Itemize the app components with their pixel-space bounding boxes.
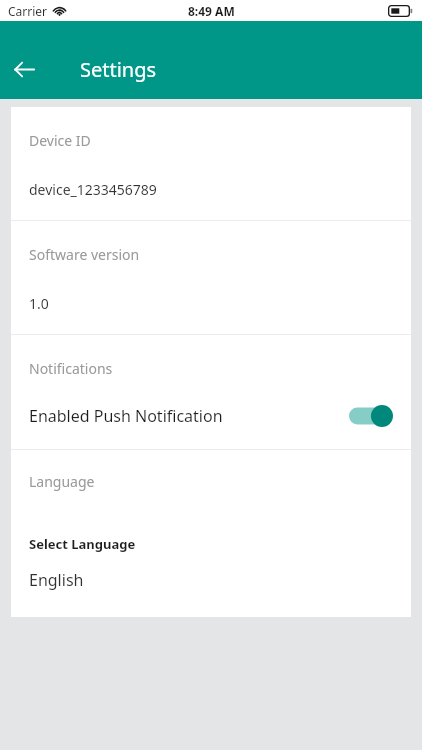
staticText: Device ID [29, 131, 91, 150]
staticText: Language [29, 472, 95, 491]
button[interactable]: Enabled Push Notification [29, 400, 393, 432]
button[interactable]: Back [6, 51, 42, 87]
staticText: 8:49 AM [188, 3, 235, 19]
staticText: 1.0 [29, 294, 49, 313]
staticText: Enabled Push Notification [29, 405, 223, 427]
staticText: Select Language [29, 535, 136, 553]
staticText: device_1233456789 [29, 180, 157, 199]
staticText: Settings [80, 56, 157, 83]
staticText: Notifications [29, 359, 113, 378]
staticText: English [29, 569, 84, 591]
staticText: Software version [29, 245, 140, 264]
staticText: Carrier [8, 3, 48, 19]
button[interactable]: Select Language [29, 535, 393, 591]
other: Enabled Push Notification toggle [349, 404, 393, 428]
